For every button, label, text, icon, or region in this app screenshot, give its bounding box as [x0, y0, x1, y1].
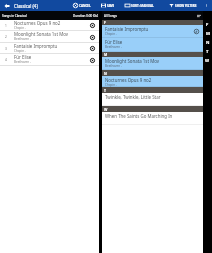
staticText: F: [206, 22, 209, 28]
button[interactable]: Play song: [190, 25, 203, 38]
staticText: Beethoven -: [105, 45, 122, 49]
button[interactable]: Back: [0, 0, 13, 11]
button[interactable]: 1: [0, 20, 99, 31]
button[interactable]: 2: [0, 31, 99, 43]
staticText: M: [104, 52, 108, 57]
button[interactable]: N: [203, 38, 212, 47]
staticText: Moonlight Sonata 1st Mov: [105, 58, 159, 64]
staticText: When The Saints Go Marching In: [105, 113, 173, 119]
staticText: N: [206, 40, 210, 46]
staticText: Duration 0:00 (0:4: [73, 14, 99, 18]
staticText: Für Elise: [14, 54, 32, 60]
button[interactable]: 3: [0, 43, 99, 54]
button[interactable]: T: [203, 47, 212, 56]
button[interactable]: SHOW FILTERS: [169, 0, 197, 11]
staticText: Nocturnes Opus 9 no2: [105, 77, 152, 83]
staticText: Twinkle, Twinkle, Little Star: [105, 94, 161, 100]
button[interactable]: Sort songs: [195, 12, 202, 19]
button[interactable]: SAVE: [101, 0, 115, 11]
button[interactable]: CANCEL: [73, 0, 91, 11]
button[interactable]: Remove from playlist: [86, 31, 99, 43]
button[interactable]: W: [203, 56, 212, 65]
staticText: W: [205, 58, 210, 64]
staticText: Moonlight Sonata 1st Mov: [14, 31, 68, 37]
button[interactable]: 4: [0, 54, 99, 66]
button[interactable]: Remove from playlist: [86, 43, 99, 54]
staticText: SORT: MANUAL: [131, 4, 154, 8]
staticText: 3: [5, 47, 7, 51]
staticText: Beethoven -: [14, 37, 31, 41]
staticText: Nocturnes Opus 9 no2: [14, 20, 61, 26]
staticText: W: [104, 107, 108, 112]
button[interactable]: When The Saints Go Marching In: [102, 112, 203, 125]
button[interactable]: Remove from playlist: [86, 20, 99, 31]
button[interactable]: Moonlight Sonata 1st Mov: [102, 57, 203, 70]
staticText: Songs in Classical: [2, 14, 27, 18]
staticText: SAVE: [107, 4, 115, 8]
staticText: CANCEL: [79, 4, 91, 8]
staticText: N: [104, 71, 107, 76]
staticText: 1: [5, 24, 7, 28]
staticText: 2: [5, 35, 7, 39]
staticText: Fantaisie Impromptu: [14, 43, 58, 49]
button[interactable]: Twinkle, Twinkle, Little Star: [102, 93, 203, 106]
staticText: Chopin -: [105, 83, 117, 87]
staticText: Für Elise: [105, 39, 123, 45]
staticText: F: [104, 20, 106, 25]
staticText: Chopin -: [14, 49, 26, 53]
button[interactable]: More options: [202, 0, 211, 11]
staticText: Beethoven -: [105, 64, 122, 68]
button[interactable]: M: [203, 29, 212, 38]
staticText: All Songs: [104, 14, 117, 18]
button[interactable]: Nocturnes Opus 9 no2: [102, 76, 203, 87]
staticText: Chopin -: [14, 26, 26, 30]
button[interactable]: Für Elise: [102, 38, 203, 52]
staticText: Chopin -: [105, 32, 117, 36]
staticText: Classical (4): [14, 3, 38, 9]
button[interactable]: SORT: MANUAL: [125, 0, 154, 11]
button[interactable]: Remove from playlist: [86, 54, 99, 66]
button[interactable]: Fantaisie Impromptu: [102, 25, 203, 38]
staticText: SHOW FILTERS: [175, 4, 197, 8]
staticText: Beethoven -: [14, 60, 31, 64]
staticText: 4: [5, 58, 7, 62]
staticText: T: [104, 88, 106, 93]
staticText: T: [206, 49, 209, 55]
button[interactable]: F: [203, 20, 212, 29]
staticText: M: [206, 31, 210, 37]
staticText: Fantaisie Impromptu: [105, 26, 149, 32]
